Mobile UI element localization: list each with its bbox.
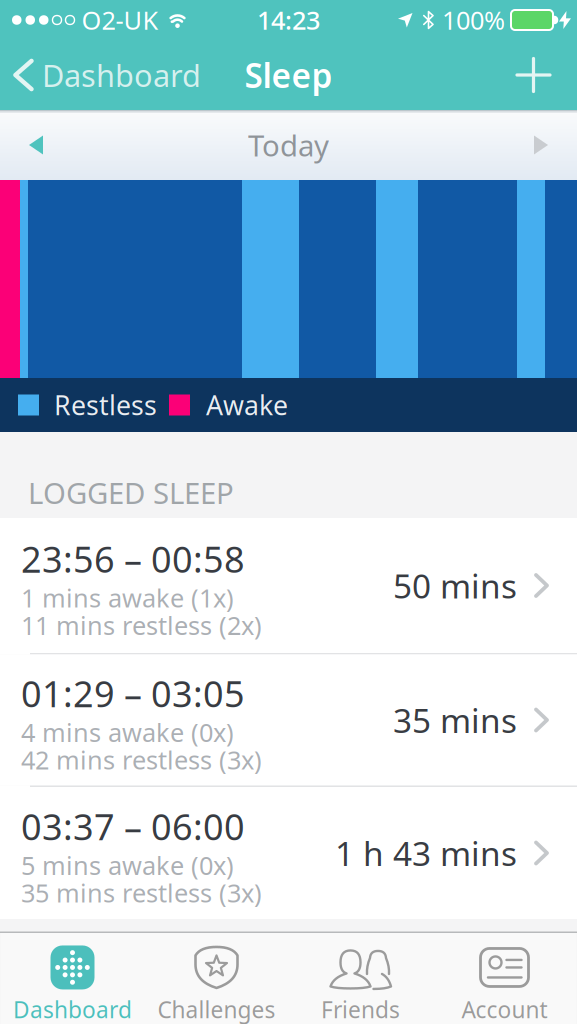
staticText: 23:56 – 00:58 bbox=[21, 535, 245, 583]
button[interactable]: Next day bbox=[534, 135, 577, 154]
staticText: 01:29 – 03:05 bbox=[21, 669, 245, 717]
staticText: Restless bbox=[54, 387, 157, 423]
staticText: LOGGED SLEEP bbox=[28, 473, 234, 512]
staticText: Dashboard bbox=[13, 994, 132, 1024]
staticText: 1 mins awake (1x) bbox=[21, 581, 234, 614]
staticText: 50 mins bbox=[393, 563, 517, 608]
staticText: 11 mins restless (2x) bbox=[21, 608, 262, 642]
staticText: Sleep bbox=[244, 53, 332, 97]
staticText: 5 mins awake (0x) bbox=[21, 848, 234, 882]
staticText: Awake bbox=[206, 387, 288, 423]
staticText: 14:23 bbox=[257, 3, 320, 37]
staticText: Friends bbox=[321, 994, 400, 1024]
staticText: Today bbox=[248, 125, 329, 164]
button[interactable]: Challenges bbox=[144, 944, 288, 1024]
staticText: Account bbox=[461, 994, 547, 1024]
staticText: 1 h 43 mins bbox=[335, 831, 517, 875]
button[interactable]: 01:29 – 03:05 bbox=[0, 654, 577, 785]
staticText: Challenges bbox=[157, 994, 275, 1024]
staticText: 4 mins awake (0x) bbox=[21, 715, 234, 749]
button[interactable]: Previous day bbox=[0, 135, 43, 154]
staticText: Dashboard bbox=[42, 55, 201, 95]
button[interactable]: Add sleep log bbox=[517, 58, 577, 91]
button[interactable]: Friends bbox=[288, 944, 432, 1024]
button[interactable]: Dashboard bbox=[0, 55, 201, 95]
button[interactable]: Dashboard bbox=[0, 944, 144, 1024]
staticText: O2-UK bbox=[81, 3, 158, 37]
staticText: 42 mins restless (3x) bbox=[21, 743, 262, 776]
staticText: 35 mins bbox=[393, 698, 517, 742]
button[interactable]: Account bbox=[432, 944, 576, 1024]
staticText: 35 mins restless (3x) bbox=[21, 876, 262, 909]
button[interactable]: 03:37 – 06:00 bbox=[0, 787, 577, 919]
staticText: 100% bbox=[442, 3, 505, 37]
staticText: 03:37 – 06:00 bbox=[21, 802, 245, 850]
button[interactable]: 23:56 – 00:58 bbox=[0, 518, 577, 653]
